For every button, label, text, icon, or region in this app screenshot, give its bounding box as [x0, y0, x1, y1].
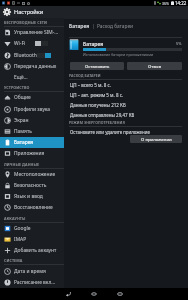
staticText: Экран [14, 117, 29, 124]
staticText: Остановить [85, 63, 110, 69]
button[interactable]: Восстановление [0, 202, 64, 213]
staticText: ЦП – акт. режим 5 м. 8 с. [70, 92, 124, 98]
staticText: РАСХОД БАТАРЕИ [69, 73, 101, 78]
staticText: Добавить аккаунт [14, 247, 57, 254]
staticText: Местоположение [14, 171, 56, 178]
staticText: IMAP [14, 236, 27, 243]
button[interactable]: Home [81, 288, 107, 300]
staticText: БЕСПРОВОДНЫЕ СЕТИ [4, 20, 48, 25]
button[interactable]: Профили звука [0, 104, 64, 115]
staticText: Остановите или удалите приложение [70, 129, 150, 135]
staticText: Батарея [83, 40, 104, 47]
button[interactable]: Google [0, 223, 64, 234]
button[interactable]: Остановить [70, 62, 124, 70]
staticText: Язык и ввод [14, 193, 43, 200]
button[interactable]: Батарея [0, 137, 64, 148]
button[interactable]: Местоположение [0, 169, 64, 180]
staticText: Дата и время [14, 268, 46, 275]
staticText: Батарея [69, 23, 90, 30]
staticText: 36% [162, 1, 170, 6]
staticText: Bluetooth [14, 52, 37, 59]
button[interactable]: Расписание вкл… [0, 277, 64, 288]
staticText: 14:22 [175, 0, 187, 6]
button[interactable]: Добавить аккаунт [0, 245, 64, 256]
staticText: Батарея [14, 139, 34, 146]
button[interactable]: Экран [0, 115, 64, 126]
staticText: Данные получены 212 КБ [70, 102, 126, 108]
staticText: Расписание вкл… [14, 279, 56, 286]
staticText: Профили звука [14, 106, 51, 113]
staticText: Общие [14, 94, 31, 101]
button[interactable]: Память [0, 126, 64, 137]
staticText: Передача данных [14, 63, 57, 70]
staticText: Google [14, 225, 31, 232]
staticText: Использование батареи приложениями [83, 52, 154, 57]
staticText: 5% [176, 41, 182, 46]
button[interactable]: Bluetooth [0, 50, 64, 61]
button[interactable]: Wi-Fi [0, 38, 64, 49]
button[interactable]: IMAP [0, 234, 64, 245]
button[interactable]: О приложении [130, 135, 182, 143]
staticText: О приложении [141, 136, 172, 142]
staticText: АККАУНТЫ [4, 216, 26, 221]
staticText: ЦП – всего 5 м. 8 с. [70, 82, 111, 88]
staticText: Настройки [14, 8, 44, 16]
button[interactable]: On [37, 53, 50, 58]
staticText: СИСТЕМА [4, 258, 23, 263]
button[interactable]: Управление SIM-… [0, 27, 64, 38]
staticText: Расход батареи [97, 23, 134, 30]
button[interactable]: Передача данных [0, 61, 64, 72]
staticText: Управление SIM-… [14, 29, 59, 36]
staticText: УСТРОЙСТВО [4, 85, 30, 90]
button[interactable]: Off [35, 41, 48, 46]
button[interactable]: Общие [0, 92, 64, 103]
staticText: Отзыв [148, 63, 162, 69]
button[interactable]: Отзыв [127, 62, 182, 70]
staticText: Данные отправлены 29,47 КБ [70, 112, 135, 118]
button[interactable]: Ещё… [0, 72, 64, 83]
staticText: Wi-Fi [14, 40, 26, 47]
button[interactable]: Язык и ввод [0, 191, 64, 202]
staticText: Восстановление [14, 204, 53, 211]
button[interactable]: Back [55, 288, 81, 300]
staticText: Безопасность [14, 182, 47, 189]
button[interactable]: Безопасность [0, 180, 64, 191]
button[interactable]: Дата и время [0, 266, 64, 277]
staticText: РЕЖИМ ЭНЕРГОПОТРЕБЛЕНИЯ [69, 120, 125, 125]
button[interactable]: Приложения [0, 148, 64, 159]
button[interactable]: Recent apps [107, 288, 133, 300]
button[interactable]: Настройки [0, 6, 64, 18]
staticText: Память [14, 128, 32, 135]
staticText: Ещё… [14, 74, 28, 81]
staticText: ЛИЧНЫЕ ДАННЫЕ [4, 162, 40, 167]
staticText: Приложения [14, 150, 45, 157]
